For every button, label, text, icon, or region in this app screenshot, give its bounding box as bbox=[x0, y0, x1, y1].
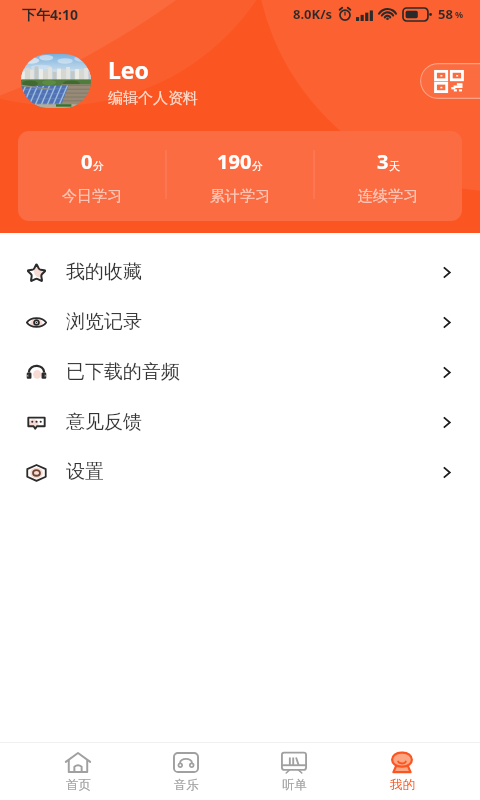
button[interactable]: 音乐 bbox=[132, 743, 240, 800]
button[interactable]: 首页 bbox=[24, 743, 132, 800]
staticText: 3 bbox=[377, 148, 389, 175]
button[interactable]: QR code bbox=[420, 63, 480, 99]
staticText: 已下载的音频 bbox=[66, 360, 180, 384]
staticText: 190 bbox=[217, 148, 252, 175]
staticText: 分 bbox=[252, 159, 263, 173]
button[interactable]: 我的收藏 bbox=[0, 247, 480, 297]
staticText: 音乐 bbox=[174, 777, 199, 793]
staticText: 我的 bbox=[390, 777, 415, 793]
staticText: 听单 bbox=[282, 777, 307, 793]
staticText: 8.0K/s bbox=[293, 5, 333, 23]
staticText: 分 bbox=[93, 159, 104, 173]
staticText: 累计学习 bbox=[210, 187, 270, 206]
staticText: 浏览记录 bbox=[66, 310, 142, 334]
staticText: 我的收藏 bbox=[66, 260, 142, 284]
staticText: 意见反馈 bbox=[66, 410, 142, 434]
staticText: 设置 bbox=[66, 460, 104, 484]
staticText: 连续学习 bbox=[358, 187, 418, 206]
staticText: 今日学习 bbox=[62, 187, 122, 206]
staticText: % bbox=[455, 8, 464, 20]
button[interactable]: 浏览记录 bbox=[0, 297, 480, 347]
button[interactable]: 设置 bbox=[0, 447, 480, 497]
button[interactable]: 听单 bbox=[240, 743, 348, 800]
staticText: 58 bbox=[438, 5, 453, 23]
staticText: 首页 bbox=[66, 777, 91, 793]
staticText: 天 bbox=[389, 159, 400, 173]
staticText: 编辑个人资料 bbox=[108, 89, 198, 108]
button[interactable]: 已下载的音频 bbox=[0, 347, 480, 397]
staticText: 下午4:10 bbox=[22, 5, 78, 24]
staticText: Leo bbox=[108, 54, 149, 85]
button[interactable]: 我的 bbox=[348, 743, 456, 800]
button[interactable]: 意见反馈 bbox=[0, 397, 480, 447]
staticText: 0 bbox=[81, 148, 93, 175]
